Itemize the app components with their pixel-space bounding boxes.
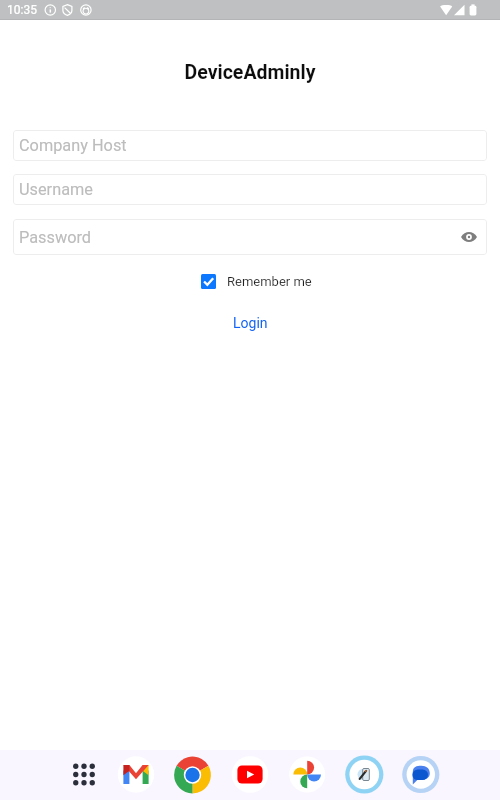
staticText: Company Host [19,136,127,155]
staticText: Username [19,180,93,199]
button[interactable]: Chrome [173,750,213,800]
button[interactable]: Show password [459,227,479,247]
button[interactable]: Gmail [116,750,156,800]
button[interactable]: Remember me [197,270,316,293]
staticText: Password [19,228,91,247]
staticText: Remember me [227,274,312,289]
button[interactable]: Messages [402,750,442,800]
button[interactable]: Device admin [345,750,385,800]
button[interactable]: Photos [288,750,328,800]
button[interactable]: Login [217,312,284,334]
button[interactable]: Company Host [13,130,487,161]
staticText: 10:35 [7,3,37,17]
staticText: DeviceAdminly [0,61,500,84]
button[interactable]: All apps [64,750,104,800]
button[interactable]: Password [13,219,487,255]
staticText: Login [233,315,268,331]
button[interactable]: YouTube [231,750,271,800]
button[interactable]: Username [13,174,487,205]
